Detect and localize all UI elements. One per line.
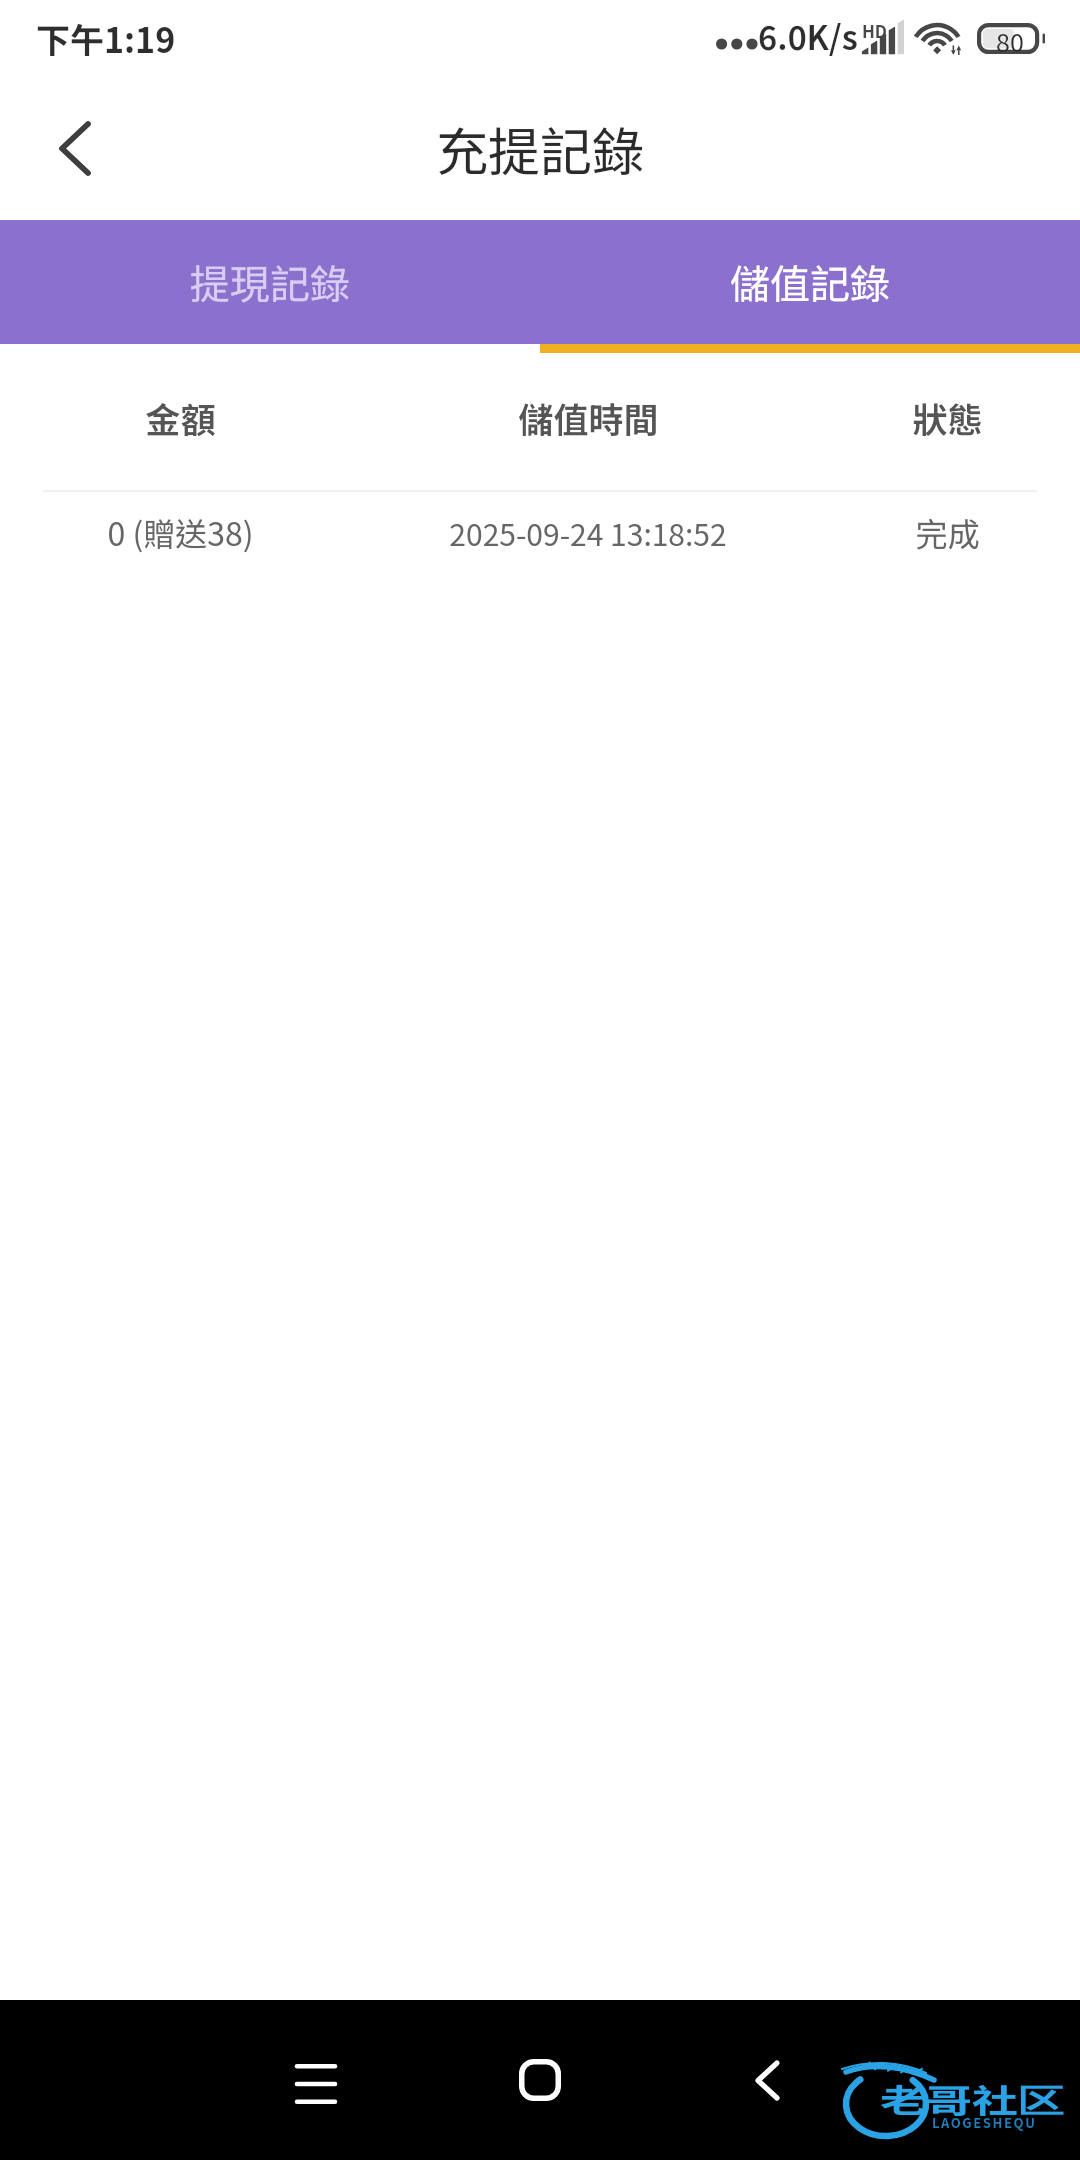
button[interactable]: Back — [717, 2030, 817, 2130]
staticText: 完成 — [915, 509, 980, 555]
button[interactable]: 儲值記錄 — [540, 220, 1080, 344]
staticText: 下午1:19 — [36, 14, 176, 63]
staticText: 充提記錄 — [436, 111, 645, 186]
staticText: 提現記錄 — [190, 253, 350, 311]
staticText: 0 (贈送38) — [107, 509, 254, 555]
staticText: HD — [862, 18, 888, 43]
staticText: 儲值記錄 — [730, 253, 890, 311]
button[interactable]: 提現記錄 — [0, 220, 540, 344]
staticText: 儲值時間 — [518, 392, 659, 443]
button[interactable]: Back — [19, 92, 131, 204]
staticText: 80 — [996, 23, 1024, 54]
staticText: 6.0K/s — [758, 12, 858, 60]
button[interactable]: 0 (贈送38) — [0, 486, 1080, 578]
button[interactable]: Recent apps — [266, 2034, 366, 2134]
staticText: 老哥社区 — [880, 2075, 1064, 2123]
staticText: 狀態 — [912, 392, 983, 443]
staticText: 金額 — [145, 392, 216, 443]
staticText: LAOGESHEQU — [932, 2113, 1037, 2132]
button[interactable]: Home — [490, 2030, 590, 2130]
staticText: 2025-09-24 13:18:52 — [449, 511, 727, 554]
